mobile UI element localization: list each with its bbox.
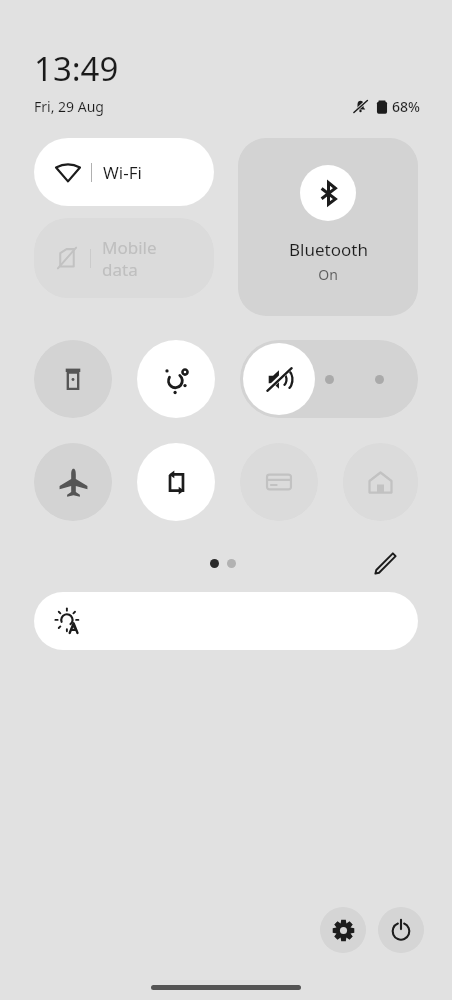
button[interactable]: Mobile data xyxy=(34,218,214,298)
button[interactable]: Settings xyxy=(320,907,366,953)
button[interactable]: Edit xyxy=(368,547,402,579)
staticText: Bluetooth xyxy=(289,238,368,261)
staticText: Mobile data xyxy=(102,236,157,281)
button[interactable]: Power xyxy=(378,907,424,953)
button[interactable]: Wallet xyxy=(240,443,318,521)
staticText: On xyxy=(318,265,338,284)
button[interactable]: Temperature xyxy=(137,340,215,418)
staticText: 13:49 xyxy=(34,46,119,91)
button[interactable]: Home controls xyxy=(343,443,418,521)
button[interactable]: Auto rotate xyxy=(137,443,215,521)
button[interactable]: Sound mode xyxy=(240,340,418,418)
button[interactable]: Bluetooth xyxy=(238,138,418,316)
staticText: 68% xyxy=(392,97,420,116)
staticText: Wi-Fi xyxy=(103,161,142,184)
button[interactable]: Wi-Fi xyxy=(34,138,214,206)
button[interactable]: Brightness xyxy=(34,592,418,650)
staticText: Fri, 29 Aug xyxy=(34,97,104,116)
button[interactable]: Airplane mode xyxy=(34,443,112,521)
button[interactable]: Flashlight xyxy=(34,340,112,418)
